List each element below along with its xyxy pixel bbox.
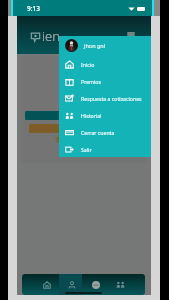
staticText: Historial bbox=[81, 112, 102, 119]
button[interactable]: Open navigation drawer bbox=[125, 29, 137, 41]
button[interactable]: Profile bbox=[60, 274, 83, 295]
button[interactable]: AYUDA bbox=[25, 111, 143, 120]
button[interactable]: Messages bbox=[84, 274, 107, 295]
button[interactable]: Premios bbox=[59, 73, 151, 90]
button[interactable]: Salir bbox=[59, 141, 151, 158]
staticText: jhon gnl bbox=[84, 42, 106, 49]
staticText: ien bbox=[42, 27, 60, 45]
button[interactable]: Historial bbox=[59, 107, 151, 124]
staticText: Premios bbox=[81, 78, 101, 85]
button[interactable]: Inicio bbox=[59, 56, 151, 73]
staticText: Salir bbox=[81, 146, 92, 153]
button[interactable]: TUS PUNTOS bbox=[29, 124, 139, 133]
button[interactable]: Community bbox=[109, 274, 132, 295]
staticText: TUS PUNTOS bbox=[70, 126, 98, 132]
button[interactable]: Home bbox=[35, 274, 58, 295]
staticText: AYUDA bbox=[77, 113, 92, 119]
staticText: Inicio bbox=[81, 61, 95, 68]
button[interactable]: Cerrar cuenta bbox=[59, 124, 151, 141]
staticText: Cerrar cuenta bbox=[81, 129, 115, 136]
staticText: Respuesta a cotizaciones bbox=[81, 95, 142, 102]
staticText: 9:13 bbox=[27, 4, 40, 13]
button[interactable]: Respuesta a cotizaciones bbox=[59, 90, 151, 107]
